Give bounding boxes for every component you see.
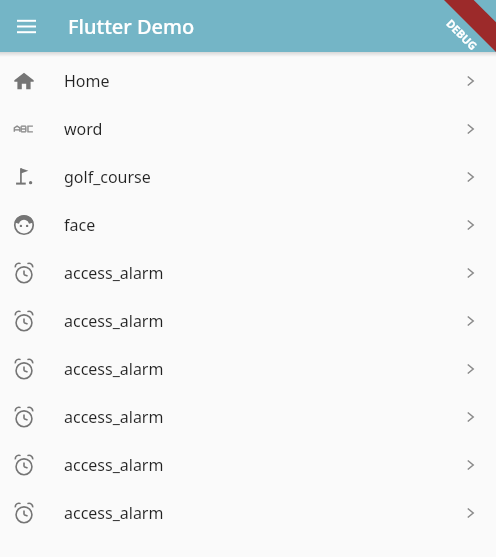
staticText: word	[64, 118, 103, 140]
staticText: access_alarm	[64, 310, 164, 332]
staticText: access_alarm	[64, 358, 164, 380]
staticText: Flutter Demo	[68, 13, 195, 40]
staticText: DEBUG	[443, 16, 481, 53]
button[interactable]: Home	[0, 57, 496, 105]
button[interactable]: Open navigation menu	[6, 6, 46, 46]
button[interactable]: access_alarm	[0, 345, 496, 393]
staticText: golf_course	[64, 166, 151, 188]
staticText: access_alarm	[64, 262, 164, 284]
button[interactable]: access_alarm	[0, 489, 496, 537]
button[interactable]: golf_course	[0, 153, 496, 201]
staticText: face	[64, 214, 96, 236]
staticText: access_alarm	[64, 406, 164, 428]
staticText: access_alarm	[64, 454, 164, 476]
button[interactable]: access_alarm	[0, 249, 496, 297]
button[interactable]: face	[0, 201, 496, 249]
button[interactable]: access_alarm	[0, 393, 496, 441]
button[interactable]: access_alarm	[0, 297, 496, 345]
staticText: access_alarm	[64, 502, 164, 524]
button[interactable]: word	[0, 105, 496, 153]
button[interactable]: access_alarm	[0, 441, 496, 489]
staticText: Home	[64, 70, 110, 92]
